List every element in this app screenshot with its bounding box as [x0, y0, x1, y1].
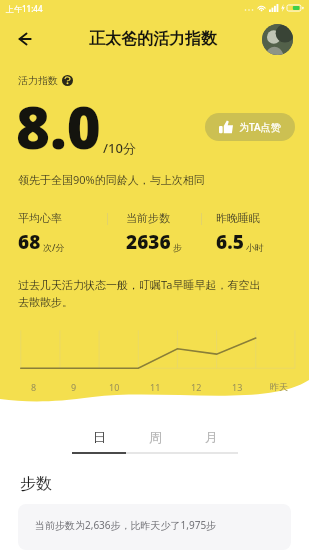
- button[interactable]: 说明: [62, 75, 73, 86]
- button[interactable]: 为TA点赞: [205, 113, 295, 141]
- staticText: 昨晚睡眠: [216, 211, 260, 225]
- button[interactable]: 日: [72, 429, 126, 445]
- staticText: 活力指数: [18, 74, 58, 87]
- staticText: 周: [149, 429, 162, 445]
- staticText: 68: [18, 229, 41, 255]
- staticText: 次/分: [43, 241, 65, 253]
- staticText: 11: [150, 381, 161, 393]
- staticText: 当前步数为2,636步，比昨天少了1,975步: [35, 518, 217, 532]
- button[interactable]: 月: [184, 429, 238, 445]
- staticText: 2636: [126, 229, 171, 255]
- staticText: 当前步数: [126, 211, 170, 225]
- staticText: 日: [93, 429, 106, 445]
- staticText: 步数: [20, 474, 52, 494]
- staticText: /10分: [103, 139, 136, 157]
- staticText: 9: [71, 381, 77, 393]
- button[interactable]: 用户头像: [262, 24, 293, 55]
- staticText: 平均心率: [18, 211, 62, 225]
- button[interactable]: 返回: [8, 23, 40, 55]
- staticText: 6.5: [216, 229, 244, 255]
- staticText: 8.0: [16, 87, 101, 166]
- staticText: 上午11:44: [6, 3, 43, 14]
- staticText: 月: [205, 429, 218, 445]
- staticText: 8: [31, 381, 37, 393]
- staticText: 步: [173, 242, 182, 253]
- staticText: 小时: [246, 242, 264, 253]
- button[interactable]: 当前步数为2,636步，比昨天少了1,975步: [18, 504, 291, 550]
- staticText: 10: [109, 381, 120, 393]
- staticText: 13: [232, 381, 243, 393]
- button[interactable]: 周: [128, 429, 182, 445]
- staticText: 过去几天活力状态一般，叮嘱Ta早睡早起，有空出 去散散步。: [18, 277, 261, 309]
- staticText: 为TA点赞: [239, 120, 281, 134]
- staticText: 领先于全国90%的同龄人，与上次相同: [18, 172, 205, 187]
- staticText: 正太爸的活力指数: [89, 29, 217, 49]
- staticText: 昨天: [270, 381, 288, 392]
- staticText: 12: [191, 381, 202, 393]
